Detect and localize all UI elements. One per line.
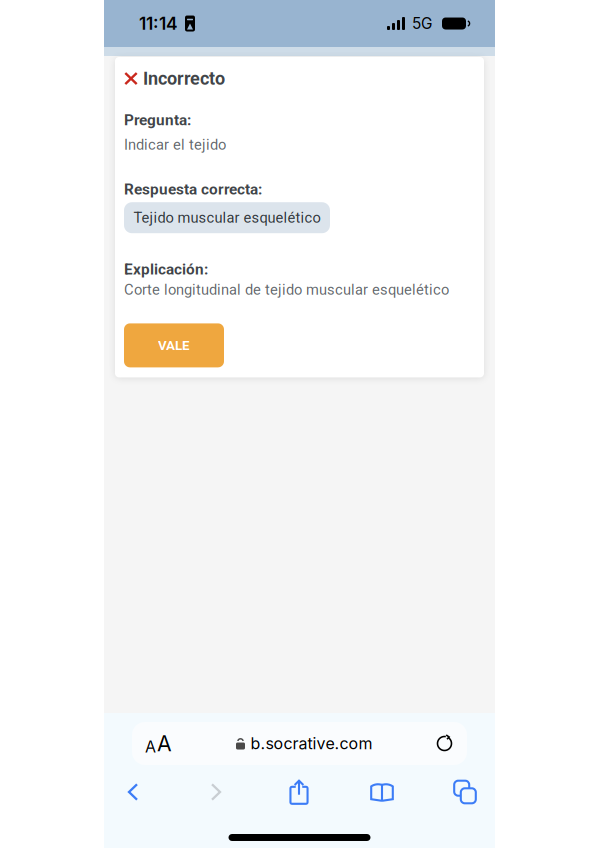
staticText: Pregunta: [124,111,191,129]
staticText: A [157,731,172,756]
button[interactable]: Bookmarks [359,777,405,807]
staticText: b.socrative.com [250,734,372,753]
button[interactable]: Forward [193,777,239,807]
button[interactable]: Tabs [442,777,488,807]
staticText: Indicar el tejido [124,136,226,153]
button[interactable]: Back [110,777,156,807]
button[interactable]: A [132,722,467,765]
staticText: 11:14 [139,13,178,34]
staticText: Explicación: [124,260,208,278]
staticText: Tejido muscular esquelético [133,209,320,226]
staticText: Respuesta correcta: [124,180,262,198]
staticText: 5G [412,14,432,33]
staticText: VALE [158,338,190,353]
staticText: Incorrecto [143,68,225,89]
button[interactable]: Share [276,777,322,807]
staticText: Corte longitudinal de tejido muscular es… [124,281,449,298]
staticText: A [145,737,156,756]
button[interactable]: VALE [124,323,224,367]
